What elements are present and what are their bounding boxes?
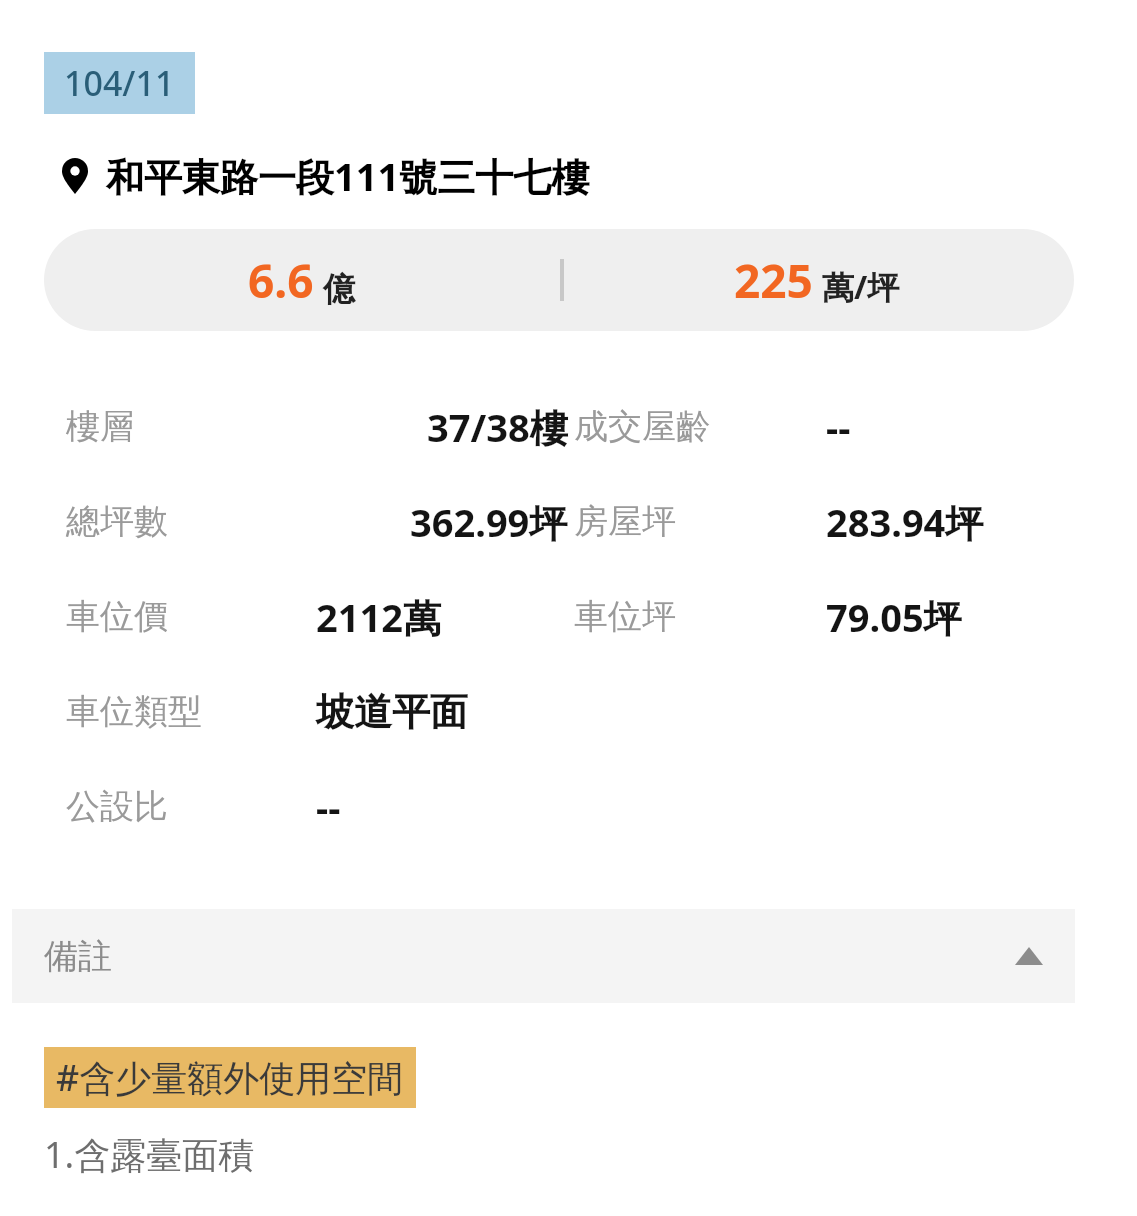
button[interactable]: 104/11 — [44, 52, 195, 114]
staticText: 樓層 — [66, 405, 134, 448]
staticText: 總坪數 — [66, 500, 168, 543]
staticText: 283.94坪 — [826, 496, 984, 548]
button[interactable]: 6.6 — [44, 229, 1074, 331]
other: Collapse 備註 — [1015, 947, 1043, 965]
staticText: 成交屋齡 — [574, 405, 710, 448]
staticText: 車位價 — [66, 595, 168, 638]
staticText: 車位坪 — [574, 595, 676, 638]
staticText: 104/11 — [64, 60, 175, 106]
staticText: 坡道平面 — [316, 688, 468, 736]
staticText: 車位類型 — [66, 690, 202, 733]
staticText: 萬/坪 — [822, 265, 900, 309]
staticText: -- — [316, 781, 341, 833]
staticText: 房屋坪 — [574, 500, 676, 543]
button[interactable]: #含少量額外使用空間 — [44, 1047, 416, 1108]
staticText: #含少量額外使用空間 — [56, 1053, 404, 1102]
staticText: -- — [826, 401, 851, 453]
staticText: 2112萬 — [316, 591, 441, 643]
staticText: 1.含露臺面積 — [44, 1130, 255, 1179]
staticText: 362.99坪 — [410, 496, 568, 548]
staticText: 6.6 — [248, 249, 314, 312]
staticText: 公設比 — [66, 785, 168, 828]
staticText: 79.05坪 — [826, 591, 962, 643]
button[interactable]: 和平東路一段111號三十七樓 — [0, 150, 1137, 202]
staticText: 37/38樓 — [427, 401, 568, 453]
staticText: 備註 — [44, 935, 112, 978]
button[interactable]: 備註 — [12, 909, 1075, 1003]
staticText: 和平東路一段111號三十七樓 — [106, 150, 590, 202]
staticText: 億 — [323, 269, 355, 309]
staticText: 225 — [734, 249, 813, 312]
